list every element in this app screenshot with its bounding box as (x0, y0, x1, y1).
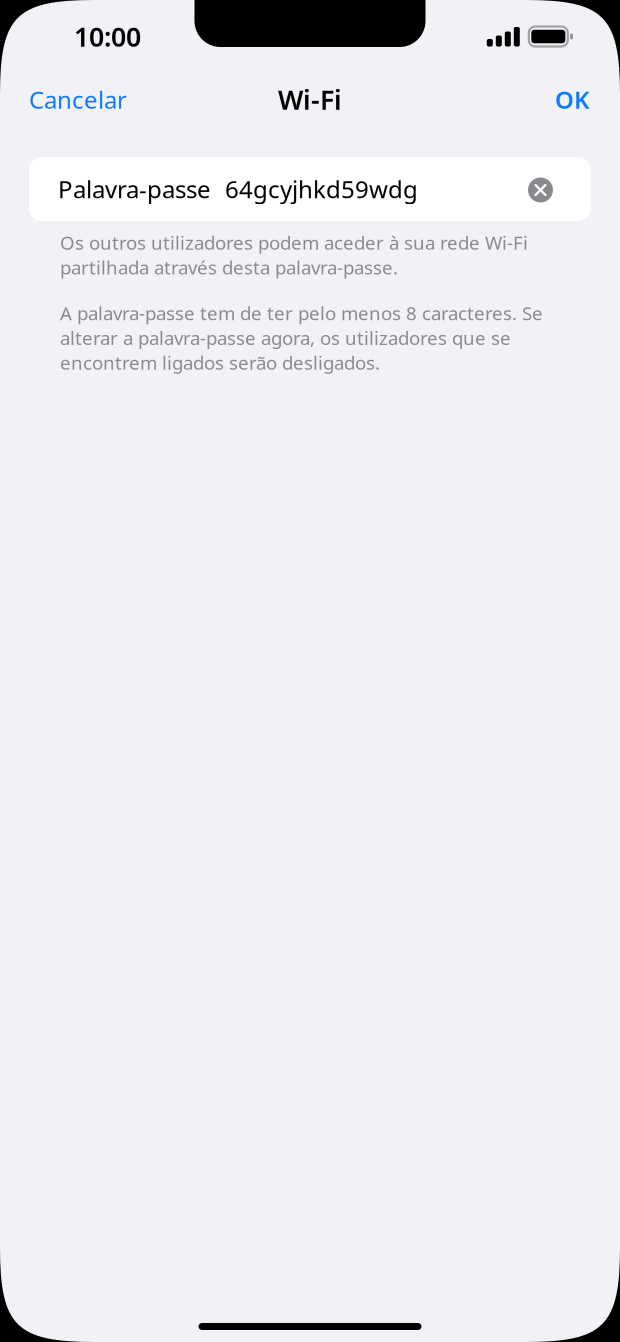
button[interactable]: OK (555, 74, 590, 125)
staticText: Palavra-passe (58, 173, 211, 205)
staticText: Os outros utilizadores podem aceder à su… (60, 230, 528, 280)
staticText: 64gcyjhkd59wdg (225, 173, 418, 205)
button[interactable]: Cancelar (29, 74, 127, 125)
staticText: Wi-Fi (278, 82, 342, 117)
staticText: 10:00 (74, 19, 141, 54)
button[interactable]: Palavra-passe (29, 157, 528, 220)
button[interactable]: Apagar (528, 177, 553, 202)
staticText: A palavra-passe tem de ter pelo menos 8 … (60, 301, 543, 375)
staticText: OK (555, 84, 590, 115)
staticText: Cancelar (29, 84, 127, 115)
